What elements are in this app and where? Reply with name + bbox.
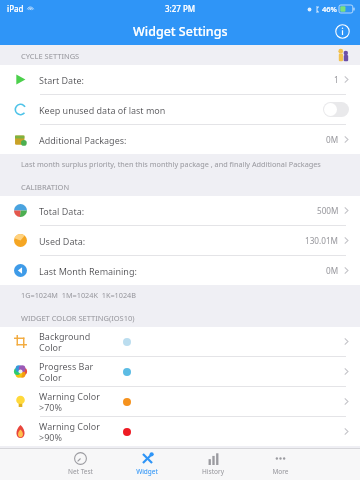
- staticText: Warning Color >90%: [39, 420, 111, 443]
- button[interactable]: Info: [332, 21, 352, 41]
- button[interactable]: Background Color: [0, 327, 360, 356]
- staticText: Start Date:: [39, 74, 334, 86]
- button[interactable]: More: [260, 448, 300, 480]
- staticText: CALIBRATION: [21, 182, 70, 192]
- other: Toggle: [323, 102, 349, 117]
- staticText: Widget Settings: [133, 23, 228, 40]
- staticText: iPad: [7, 3, 24, 14]
- staticText: 46%: [322, 4, 337, 14]
- staticText: 1: [334, 74, 339, 85]
- staticText: Net Test: [68, 467, 93, 476]
- button[interactable]: Warning Color >70%: [0, 387, 360, 416]
- staticText: Progress Bar Color: [39, 360, 111, 383]
- button[interactable]: Net Test: [60, 448, 100, 480]
- button[interactable]: Widget: [127, 448, 167, 480]
- staticText: Used Data:: [39, 235, 305, 247]
- staticText: More: [272, 467, 289, 476]
- button[interactable]: Start Date:: [0, 65, 360, 94]
- staticText: CYCLE SETTINGS: [21, 51, 80, 61]
- button[interactable]: Last Month Remaining:: [0, 256, 360, 285]
- staticText: Last Month Remaining:: [39, 265, 326, 277]
- staticText: Widget: [136, 467, 158, 476]
- button[interactable]: Progress Bar Color: [0, 357, 360, 386]
- staticText: 0M: [326, 134, 339, 145]
- staticText: Last month surplus priority, then this m…: [21, 159, 321, 169]
- staticText: 500M: [317, 205, 339, 216]
- staticText: Background Color: [39, 330, 111, 353]
- staticText: WIDGET COLOR SETTING(IOS10): [21, 313, 135, 323]
- staticText: 3:27 PM: [165, 3, 196, 14]
- staticText: 130.01M: [305, 235, 339, 246]
- button[interactable]: Total Data:: [0, 196, 360, 225]
- button[interactable]: Keep unused data of last mon: [0, 95, 360, 124]
- button[interactable]: Used Data:: [0, 226, 360, 255]
- button[interactable]: History: [193, 448, 233, 480]
- staticText: Additional Packages:: [39, 134, 326, 146]
- staticText: Total Data:: [39, 205, 317, 217]
- staticText: History: [202, 467, 224, 476]
- button[interactable]: Warning Color >90%: [0, 417, 360, 446]
- staticText: Keep unused data of last mon: [39, 104, 323, 116]
- button[interactable]: Account: [336, 48, 350, 62]
- staticText: 1G=1024M 1M=1024K 1K=1024B: [21, 290, 137, 300]
- staticText: 0M: [326, 265, 339, 276]
- staticText: Warning Color >70%: [39, 390, 111, 413]
- button[interactable]: Additional Packages:: [0, 125, 360, 154]
